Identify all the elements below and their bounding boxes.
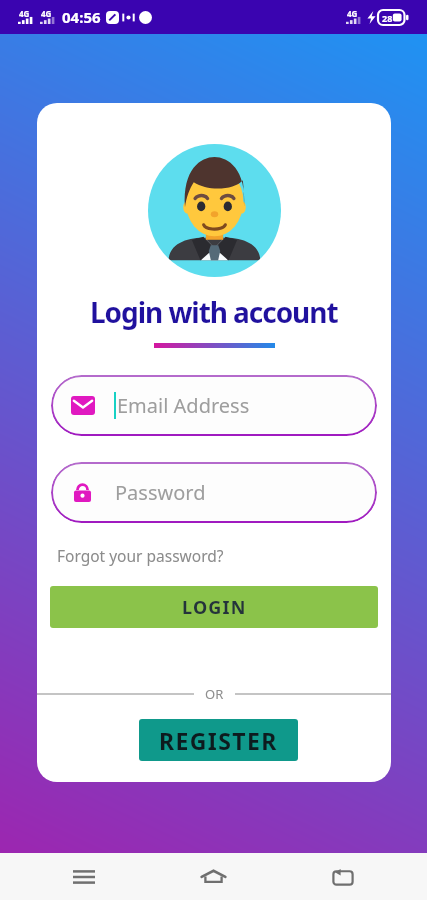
staticText: 28 [382,12,393,24]
staticText: 4G [41,8,52,19]
button[interactable]: REGISTER [139,719,298,761]
staticText: Email Address [117,392,250,419]
staticText: Login with account [90,293,338,331]
button[interactable]: Home [148,853,278,900]
button[interactable]: Forgot your password? [57,545,224,566]
staticText: Password [115,479,206,506]
staticText: LOGIN [182,595,247,620]
button[interactable]: Email Address [51,375,377,436]
button[interactable]: Back [278,853,408,900]
staticText: OR [205,685,224,703]
button[interactable]: Recents [19,853,148,900]
staticText: 4G [347,8,358,19]
staticText: Forgot your password? [57,545,224,566]
staticText: REGISTER [159,725,278,756]
button[interactable]: Password [51,462,377,523]
button[interactable]: LOGIN [50,586,378,628]
staticText: 04:56 [62,7,101,27]
staticText: 4G [19,8,30,19]
